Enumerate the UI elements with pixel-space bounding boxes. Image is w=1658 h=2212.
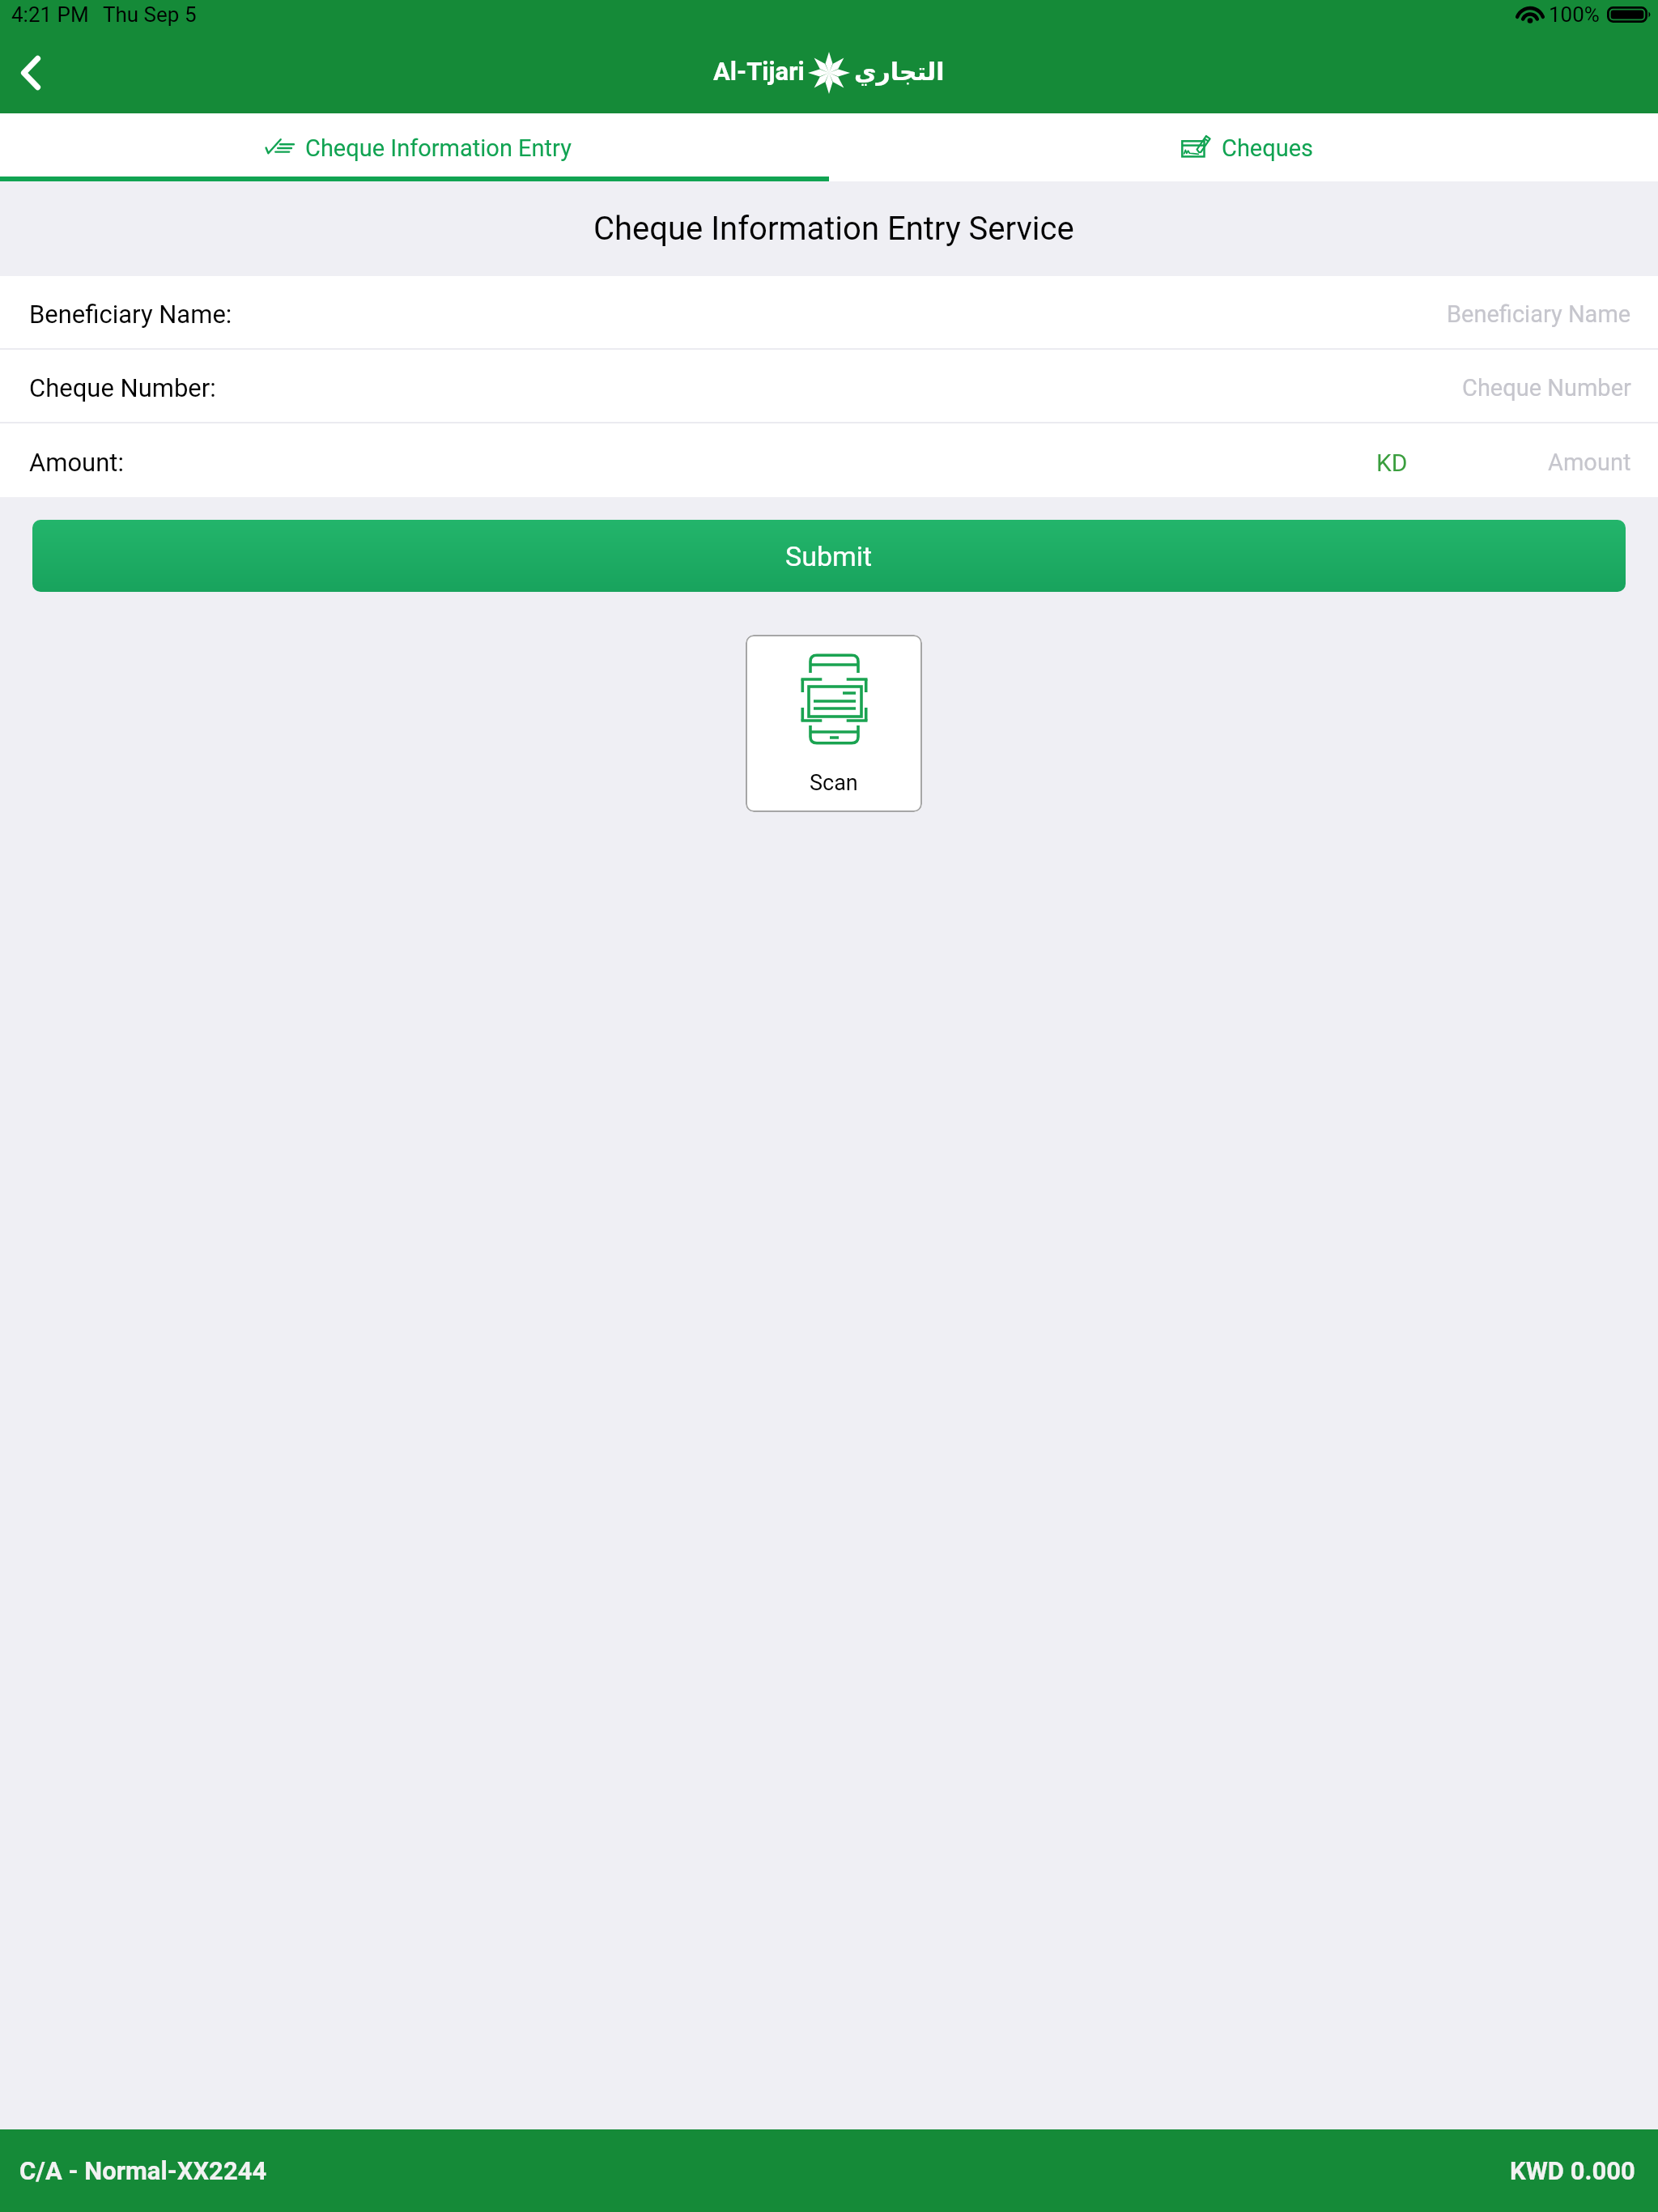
button[interactable]: Cheque Information Entry	[0, 113, 829, 177]
staticText: Cheques	[1222, 134, 1314, 162]
staticText: Beneficiary Name	[1447, 300, 1631, 328]
staticText: 4:21 PM	[11, 2, 89, 27]
button[interactable]: Back	[0, 42, 62, 104]
staticText: Cheque Information Entry Service	[593, 210, 1074, 248]
staticText: Thu Sep 5	[103, 2, 197, 27]
staticText: Scan	[810, 770, 858, 796]
staticText: 100%	[1549, 2, 1600, 27]
staticText: Amount	[1548, 449, 1631, 476]
staticText: KD	[1376, 449, 1408, 477]
staticText: Al-Tijari	[713, 57, 805, 86]
button[interactable]: Amount:	[0, 423, 1658, 497]
staticText: Submit	[785, 540, 873, 572]
staticText: Cheque Number	[1462, 374, 1631, 402]
staticText: Cheque Information Entry	[305, 134, 572, 162]
staticText: Amount:	[29, 448, 124, 477]
button[interactable]: Scan	[746, 635, 922, 812]
button[interactable]: Submit	[32, 520, 1626, 592]
staticText: Beneficiary Name:	[29, 300, 232, 329]
button[interactable]: Beneficiary Name:	[0, 276, 1658, 348]
button[interactable]: Cheques	[829, 113, 1658, 177]
button[interactable]: C/A - Normal-XX2244	[0, 2129, 1658, 2212]
staticText: Cheque Number:	[29, 373, 216, 402]
button[interactable]: Cheque Number:	[0, 350, 1658, 422]
staticText: KWD 0.000	[1510, 2156, 1635, 2185]
staticText: C/A - Normal-XX2244	[19, 2156, 267, 2185]
staticText: التجاري	[854, 57, 945, 86]
